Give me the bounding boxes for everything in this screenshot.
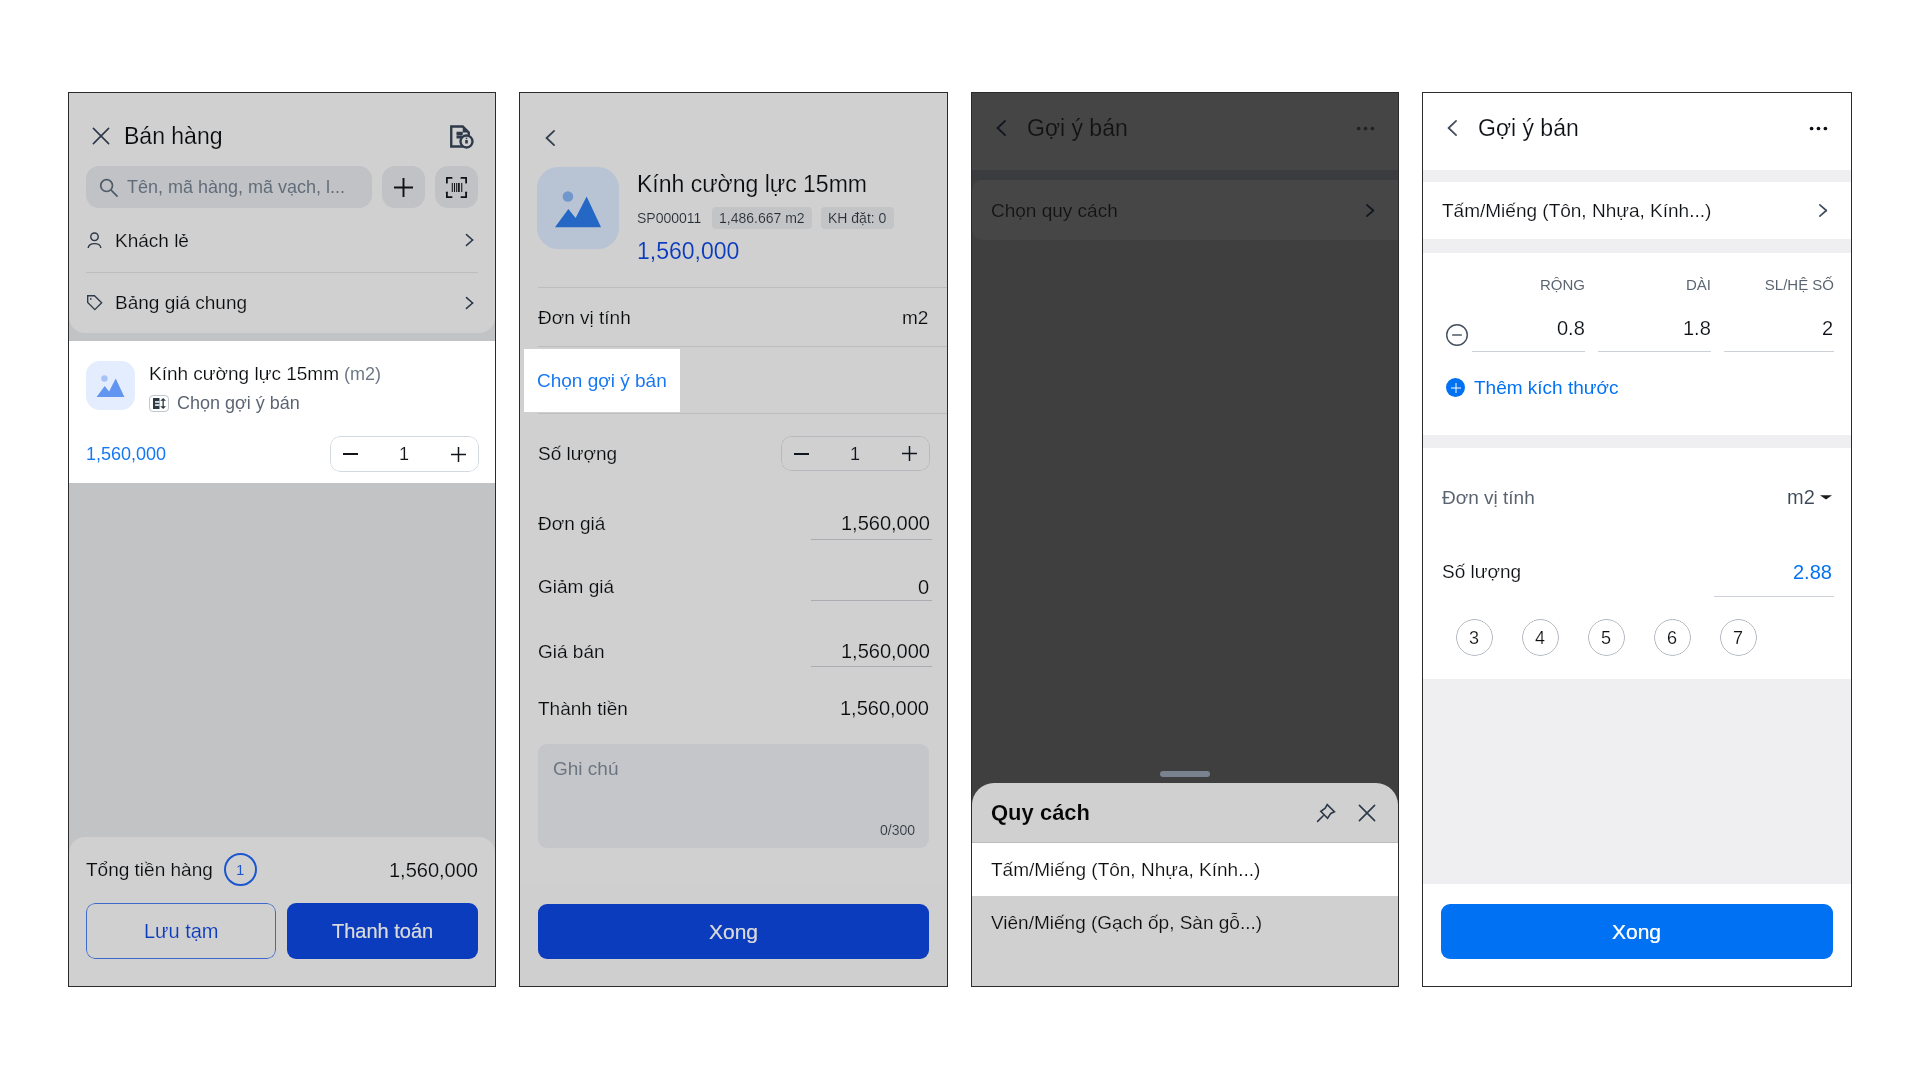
staticText: 1,560,000: [86, 444, 167, 464]
staticText: Thêm kích thước: [1474, 377, 1619, 398]
button[interactable]: Chọn gợi ý bán: [524, 349, 680, 412]
staticText: Bán hàng: [124, 123, 223, 149]
staticText: 1,560,000: [637, 238, 740, 264]
staticText: 1,560,000: [840, 697, 929, 719]
button[interactable]: Xong: [1441, 904, 1833, 959]
staticText: Xong: [709, 920, 759, 943]
button[interactable]: Add item: [382, 166, 425, 208]
staticText: Lưu tạm: [144, 920, 219, 942]
staticText: Quy cách: [991, 800, 1091, 825]
staticText: 1: [850, 444, 861, 464]
staticText: 4: [1535, 628, 1546, 648]
button[interactable]: Increase quantity: [889, 436, 930, 471]
staticText: KH đặt: 0: [828, 210, 887, 226]
staticText: m2: [902, 307, 929, 328]
button[interactable]: Xong: [538, 904, 929, 959]
staticText: 0: [918, 576, 930, 598]
button[interactable]: Scan barcode: [435, 166, 478, 208]
button[interactable]: Decrease quantity: [330, 436, 371, 472]
staticText: Xong: [1612, 920, 1662, 943]
staticText: (m2): [344, 364, 381, 384]
staticText: 1: [236, 861, 245, 878]
staticText: Giá bán: [538, 641, 605, 662]
button[interactable]: Back: [540, 127, 562, 149]
staticText: SL/HỆ SỐ: [1724, 276, 1834, 293]
staticText: Bảng giá chung: [115, 292, 248, 313]
staticText: Thành tiền: [538, 698, 628, 719]
button[interactable]: More options: [1353, 116, 1377, 140]
staticText: Khách lẻ: [115, 230, 189, 251]
staticText: 1,560,000: [841, 512, 930, 534]
staticText: 1,560,000: [841, 640, 930, 662]
button[interactable]: Tấm/Miếng (Tôn, Nhựa, Kính...): [1423, 182, 1851, 239]
button[interactable]: Back: [1442, 117, 1464, 139]
staticText: Thanh toán: [332, 920, 434, 942]
staticText: 5: [1601, 628, 1612, 648]
button[interactable]: Lưu tạm: [86, 903, 276, 959]
button[interactable]: Chọn quy cách: [972, 180, 1398, 240]
staticText: Đơn vị tính: [538, 307, 631, 328]
button[interactable]: Viên/Miếng (Gạch ốp, Sàn gỗ...): [972, 896, 1398, 949]
button[interactable]: Increase quantity: [438, 436, 479, 472]
staticText: 7: [1733, 628, 1744, 648]
button[interactable]: 5: [1588, 619, 1625, 656]
staticText: Tấm/Miếng (Tôn, Nhựa, Kính...): [991, 859, 1261, 880]
staticText: SP000011: [637, 210, 702, 226]
staticText: 2: [1822, 317, 1834, 339]
staticText: Kính cường lực 15mm: [149, 363, 339, 384]
button[interactable]: Kính cường lực 15mm: [69, 341, 495, 483]
staticText: 6: [1667, 628, 1678, 648]
button[interactable]: Thêm kích thước: [1446, 377, 1619, 398]
staticText: Tổng tiền hàng: [86, 859, 213, 880]
button[interactable]: 7: [1720, 619, 1757, 656]
staticText: Tấm/Miếng (Tôn, Nhựa, Kính...): [1442, 200, 1712, 221]
button[interactable]: Back: [991, 117, 1013, 139]
button[interactable]: More options: [1806, 116, 1830, 140]
staticText: Kính cường lực 15mm: [637, 171, 867, 197]
staticText: Đơn vị tính: [1442, 487, 1535, 508]
button[interactable]: Decrease quantity: [781, 436, 822, 471]
staticText: Gợi ý bán: [1478, 115, 1579, 141]
button[interactable]: Khách lẻ: [69, 208, 495, 272]
staticText: 1.8: [1683, 317, 1711, 339]
staticText: 1,486.667 m2: [719, 210, 805, 226]
button[interactable]: Remove size: [1446, 324, 1468, 346]
staticText: 1: [399, 444, 410, 464]
staticText: Số lượng: [1442, 561, 1522, 582]
staticText: RỘNG: [1472, 276, 1585, 293]
staticText: Chọn gợi ý bán: [537, 370, 667, 391]
staticText: 1,560,000: [389, 859, 478, 881]
button[interactable]: Close: [1355, 801, 1379, 825]
staticText: Số lượng: [538, 443, 618, 464]
button[interactable]: 6: [1654, 619, 1691, 656]
button[interactable]: Pin: [1314, 801, 1338, 825]
staticText: 0.8: [1557, 317, 1585, 339]
button[interactable]: Close: [91, 126, 111, 146]
staticText: Tên, mã hàng, mã vạch, l...: [127, 177, 346, 197]
staticText: m2: [1787, 486, 1815, 508]
button[interactable]: 4: [1522, 619, 1559, 656]
staticText: Chọn gợi ý bán: [177, 393, 300, 413]
staticText: Ghi chú: [553, 758, 619, 779]
staticText: 3: [1469, 628, 1480, 648]
staticText: Chọn quy cách: [991, 200, 1118, 221]
button[interactable]: Ghi chú: [538, 744, 929, 848]
button[interactable]: 3: [1456, 619, 1493, 656]
staticText: Đơn giá: [538, 513, 606, 534]
staticText: 0/300: [880, 822, 916, 838]
button[interactable]: Tấm/Miếng (Tôn, Nhựa, Kính...): [972, 843, 1398, 896]
button[interactable]: Order information: [449, 124, 474, 149]
staticText: Giảm giá: [538, 576, 615, 597]
button[interactable]: Bảng giá chung: [69, 273, 495, 332]
button[interactable]: Thanh toán: [287, 903, 478, 959]
staticText: Gợi ý bán: [1027, 115, 1128, 141]
staticText: DÀI: [1598, 276, 1711, 293]
staticText: Viên/Miếng (Gạch ốp, Sàn gỗ...): [991, 912, 1263, 933]
button[interactable]: Tên, mã hàng, mã vạch, l...: [86, 166, 372, 208]
staticText: 2.88: [1793, 561, 1832, 583]
